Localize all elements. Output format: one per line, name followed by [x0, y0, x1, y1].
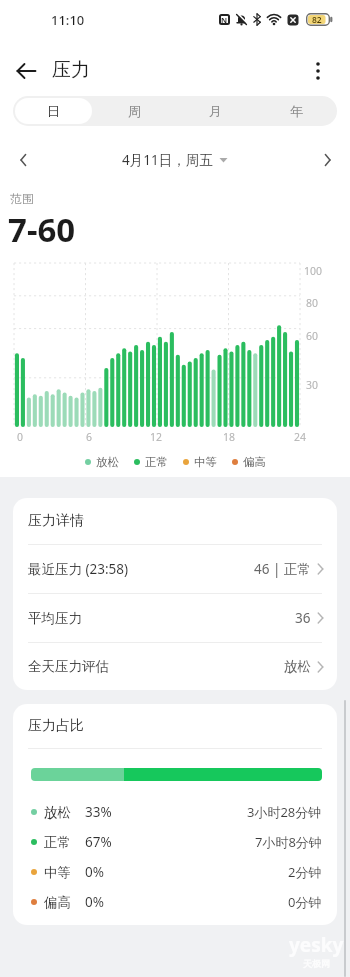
staticText: 中等: [44, 864, 71, 881]
staticText: 36: [295, 609, 311, 627]
staticText: 周: [128, 103, 141, 119]
button[interactable]: [10, 147, 36, 173]
staticText: 全天压力评估: [28, 658, 109, 675]
staticText: 最近压力 (23:58): [28, 560, 129, 578]
staticText: 7小时8分钟: [255, 833, 322, 851]
staticText: 压力详情: [28, 512, 84, 530]
staticText: 压力占比: [28, 717, 84, 735]
staticText: 12: [150, 430, 163, 444]
staticText: 正常: [145, 455, 168, 469]
staticText: 放松: [96, 455, 119, 469]
staticText: 6: [86, 430, 93, 444]
staticText: 2分钟: [288, 863, 322, 881]
button[interactable]: 全天压力评估: [13, 643, 337, 690]
button[interactable]: 偏高: [13, 887, 337, 917]
button[interactable]: 中等: [13, 857, 337, 887]
staticText: 偏高: [44, 894, 71, 911]
staticText: 0: [17, 430, 24, 444]
staticText: 46 | 正常: [254, 560, 311, 578]
button[interactable]: [10, 55, 42, 87]
staticText: 80: [306, 296, 319, 310]
staticText: 0%: [85, 863, 104, 881]
button[interactable]: [302, 55, 334, 87]
staticText: 偏高: [243, 455, 266, 469]
staticText: 11:10: [51, 11, 85, 29]
staticText: 压力: [52, 58, 90, 82]
staticText: 30: [306, 378, 319, 392]
staticText: 放松: [44, 804, 71, 821]
staticText: 0分钟: [288, 893, 322, 911]
staticText: N: [221, 15, 228, 25]
staticText: 60: [306, 329, 319, 343]
staticText: 18: [223, 430, 236, 444]
button[interactable]: 放松: [13, 797, 337, 827]
button[interactable]: 平均压力: [13, 594, 337, 642]
button[interactable]: 最近压力 (23:58): [13, 545, 337, 593]
staticText: 3小时28分钟: [247, 803, 322, 821]
staticText: 100: [304, 264, 323, 278]
staticText: 天极网: [303, 958, 330, 969]
staticText: 放松: [284, 658, 311, 675]
staticText: 82: [312, 14, 322, 26]
button[interactable]: 日: [15, 98, 92, 124]
staticText: 33%: [85, 803, 112, 821]
staticText: 0%: [85, 893, 104, 911]
button[interactable]: 月: [175, 96, 256, 126]
staticText: 中等: [194, 455, 217, 469]
staticText: 正常: [44, 834, 71, 851]
staticText: 24: [294, 430, 307, 444]
staticText: 月: [209, 103, 222, 119]
staticText: 平均压力: [28, 610, 82, 627]
button[interactable]: [314, 147, 340, 173]
staticText: 范围: [10, 191, 34, 206]
staticText: 日: [47, 103, 60, 119]
staticText: 67%: [85, 833, 112, 851]
button[interactable]: 周: [94, 96, 175, 126]
staticText: 7-60: [8, 207, 76, 251]
staticText: 年: [290, 103, 303, 119]
button[interactable]: 正常: [13, 827, 337, 857]
button[interactable]: 4月11日，周五: [122, 151, 228, 169]
staticText: yesky: [289, 932, 344, 958]
staticText: 4月11日，周五: [122, 151, 213, 169]
button[interactable]: 年: [256, 96, 337, 126]
